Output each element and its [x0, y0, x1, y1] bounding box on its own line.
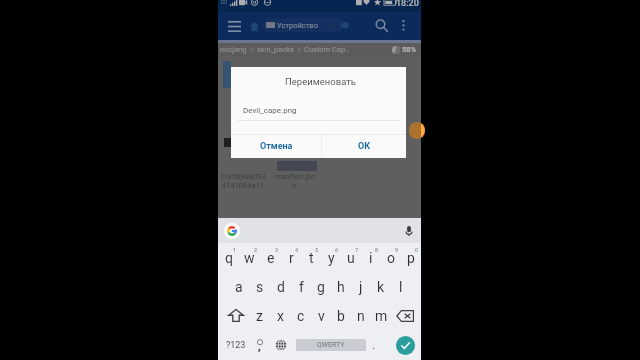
staticText: 4141084a11	[222, 181, 265, 190]
button[interactable]: Open navigation drawer	[223, 12, 245, 40]
staticText: x	[277, 308, 284, 324]
staticText: j	[359, 279, 363, 295]
staticText: 1	[233, 247, 237, 253]
button[interactable]: Отмена	[231, 134, 321, 158]
button[interactable]: y	[321, 243, 341, 272]
button[interactable]: Home	[245, 12, 263, 40]
button[interactable]: j	[351, 272, 371, 301]
button[interactable]: Voice input	[402, 224, 416, 238]
staticText: 0	[415, 247, 419, 253]
staticText: g	[317, 279, 325, 295]
staticText: Отмена	[260, 141, 293, 152]
button[interactable]: h	[331, 272, 351, 301]
button[interactable]: p	[401, 243, 421, 272]
button[interactable]: QWERTY	[296, 339, 366, 351]
button[interactable]: m	[371, 301, 391, 330]
staticText: 6	[335, 247, 339, 253]
staticText: n	[357, 308, 365, 324]
staticText: y	[328, 250, 335, 266]
staticText: t	[309, 250, 314, 266]
button[interactable]: Emoji	[253, 330, 267, 360]
staticText: ?123	[226, 340, 246, 351]
staticText: l	[399, 279, 403, 295]
staticText: i	[369, 250, 373, 266]
staticText: f	[299, 279, 304, 295]
staticText: ОК	[358, 141, 371, 152]
staticText: nocjang	[220, 45, 247, 54]
staticText: k	[377, 279, 385, 295]
staticText: r	[289, 250, 294, 266]
staticText: s	[256, 279, 264, 295]
button[interactable]: x	[270, 301, 291, 330]
staticText: 7	[355, 247, 359, 253]
button[interactable]: u	[341, 243, 361, 272]
staticText: o	[387, 250, 395, 266]
button[interactable]: c	[291, 301, 311, 330]
button[interactable]: Backspace	[391, 301, 421, 330]
staticText: Переименовать	[233, 76, 408, 87]
staticText: z	[256, 308, 263, 324]
button[interactable]: Shift	[218, 301, 249, 330]
staticText: q	[225, 250, 233, 266]
staticText: 2	[254, 247, 258, 253]
button[interactable]: v	[311, 301, 331, 330]
button[interactable]: g	[311, 272, 331, 301]
button[interactable]: ?123	[218, 330, 253, 360]
button[interactable]: n	[351, 301, 371, 330]
staticText: h	[337, 279, 345, 295]
staticText: d	[277, 279, 285, 295]
button[interactable]: o	[381, 243, 401, 272]
staticText: 58%	[402, 45, 417, 54]
button[interactable]: Устройство	[262, 18, 344, 32]
staticText: 3	[275, 247, 279, 253]
staticText: QWERTY	[317, 341, 345, 349]
staticText: skin_packs	[257, 45, 294, 54]
staticText: p	[407, 250, 415, 266]
staticText: a	[235, 279, 243, 295]
staticText: 18:20	[396, 0, 419, 9]
button[interactable]: f	[291, 272, 311, 301]
staticText: 9	[395, 247, 399, 253]
staticText: c	[297, 308, 305, 324]
button[interactable]: .	[364, 330, 383, 360]
button[interactable]: s	[249, 272, 270, 301]
button[interactable]: q	[218, 243, 239, 272]
button[interactable]: a	[228, 272, 249, 301]
staticText: 5	[315, 247, 319, 253]
staticText: 4	[295, 247, 299, 253]
staticText: b	[337, 308, 345, 324]
button[interactable]: Switch language	[267, 330, 294, 360]
staticText: u	[347, 250, 355, 266]
staticText: w	[244, 250, 255, 266]
button[interactable]: ОК	[322, 134, 406, 158]
staticText: .	[372, 339, 375, 352]
button[interactable]: Google Search	[224, 223, 240, 239]
staticText: Custom Cap..	[304, 45, 350, 54]
button[interactable]: t	[301, 243, 321, 272]
button[interactable]: More options	[393, 11, 413, 39]
button[interactable]: l	[391, 272, 411, 301]
button[interactable]: Search	[369, 11, 393, 39]
staticText: e	[267, 250, 275, 266]
staticText: f1e589d8d93	[221, 172, 266, 181]
staticText: m	[375, 308, 388, 324]
staticText: v	[318, 308, 325, 324]
staticText: Устройство	[277, 21, 318, 30]
button[interactable]: d	[270, 272, 291, 301]
button[interactable]: w	[239, 243, 260, 272]
staticText: Devil_cape.png	[243, 106, 297, 115]
staticText: 8	[375, 247, 379, 253]
button[interactable]: k	[371, 272, 391, 301]
button[interactable]: z	[249, 301, 270, 330]
button[interactable]: e	[260, 243, 281, 272]
button[interactable]: b	[331, 301, 351, 330]
staticText: manifest.jso	[274, 172, 316, 181]
button[interactable]: r	[281, 243, 301, 272]
button[interactable]: Enter	[396, 336, 415, 355]
staticText: n	[292, 181, 297, 190]
button[interactable]: i	[361, 243, 381, 272]
